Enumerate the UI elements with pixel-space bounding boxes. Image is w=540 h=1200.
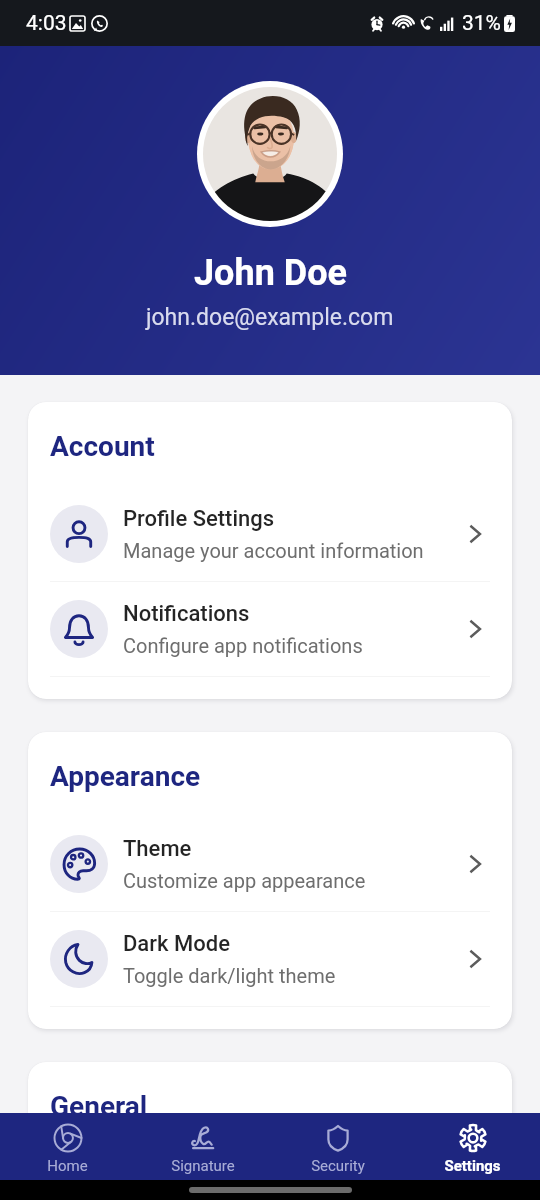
button[interactable]: Dark Mode bbox=[28, 912, 512, 1006]
staticText: Toggle dark/light theme bbox=[123, 964, 336, 987]
button[interactable]: Theme bbox=[28, 817, 512, 911]
button[interactable]: Notifications bbox=[28, 582, 512, 676]
staticText: 31% bbox=[462, 11, 501, 36]
staticText: Security bbox=[311, 1157, 365, 1175]
button[interactable]: Profile Settings bbox=[28, 487, 512, 581]
button[interactable]: Language bbox=[28, 1147, 512, 1200]
staticText: 4:03 bbox=[26, 11, 67, 36]
button[interactable]: Signature bbox=[135, 1113, 270, 1180]
staticText: Home bbox=[47, 1157, 88, 1175]
staticText: Manage your account information bbox=[123, 539, 424, 562]
staticText: Configure app notifications bbox=[123, 634, 363, 657]
staticText: Customize app appearance bbox=[123, 869, 366, 892]
staticText: Theme bbox=[123, 836, 192, 862]
staticText: John Doe bbox=[194, 252, 347, 294]
staticText: English (US) bbox=[123, 1180, 232, 1200]
staticText: Appearance bbox=[50, 760, 201, 793]
staticText: Language bbox=[123, 1147, 220, 1173]
staticText: Signature bbox=[171, 1157, 235, 1175]
staticText: General bbox=[50, 1090, 148, 1123]
staticText: john.doe@example.com bbox=[146, 304, 394, 331]
staticText: Account bbox=[50, 430, 155, 463]
staticText: Settings bbox=[444, 1157, 501, 1175]
button[interactable]: Settings bbox=[405, 1113, 540, 1180]
staticText: Dark Mode bbox=[123, 931, 231, 957]
staticText: Profile Settings bbox=[123, 506, 275, 532]
button[interactable]: Home bbox=[0, 1113, 135, 1180]
button[interactable]: Security bbox=[270, 1113, 405, 1180]
staticText: Notifications bbox=[123, 601, 250, 627]
